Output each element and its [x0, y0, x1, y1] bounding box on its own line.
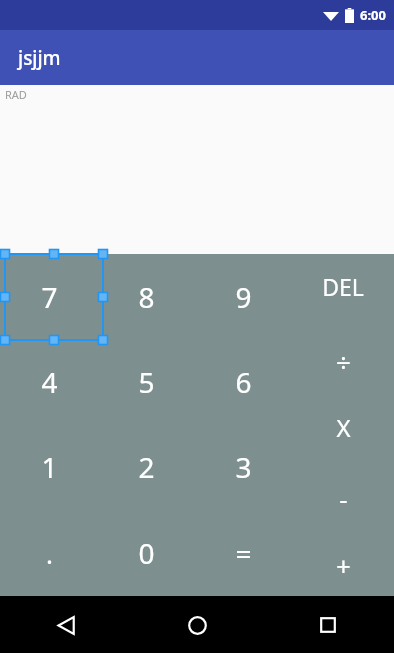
button[interactable]: Back: [42, 601, 90, 649]
staticText: 2: [138, 448, 155, 486]
staticText: 7: [41, 278, 58, 316]
button[interactable]: 3: [195, 424, 292, 510]
button[interactable]: X: [292, 392, 394, 460]
button[interactable]: 9: [195, 254, 292, 339]
staticText: 6:00: [360, 6, 386, 24]
staticText: 1: [41, 448, 58, 486]
button[interactable]: .: [0, 510, 98, 596]
staticText: =: [235, 534, 252, 572]
staticText: 0: [138, 534, 155, 572]
button[interactable]: Home: [173, 601, 221, 649]
staticText: 6: [235, 363, 252, 401]
button[interactable]: 8: [98, 254, 195, 339]
button[interactable]: 6: [195, 339, 292, 424]
button[interactable]: ÷: [292, 323, 394, 392]
button[interactable]: 0: [98, 510, 195, 596]
staticText: +: [336, 548, 351, 583]
button[interactable]: -: [292, 460, 394, 528]
button[interactable]: =: [195, 510, 292, 596]
staticText: DEL: [322, 271, 364, 302]
staticText: jsjjm: [18, 45, 61, 71]
staticText: 4: [41, 363, 58, 401]
button[interactable]: +: [292, 528, 394, 596]
staticText: ÷: [336, 344, 351, 379]
staticText: 3: [235, 448, 252, 486]
staticText: 5: [138, 363, 155, 401]
button[interactable]: Recent apps: [304, 601, 352, 649]
button[interactable]: 5: [98, 339, 195, 424]
staticText: X: [336, 411, 351, 444]
button[interactable]: DEL: [292, 254, 394, 323]
button[interactable]: 7: [0, 254, 98, 339]
staticText: 9: [235, 278, 252, 316]
button[interactable]: 4: [0, 339, 98, 424]
button[interactable]: 2: [98, 424, 195, 510]
staticText: 8: [138, 278, 155, 316]
button[interactable]: 1: [0, 424, 98, 510]
staticText: RAD: [5, 87, 27, 102]
staticText: -: [339, 481, 348, 516]
staticText: .: [46, 536, 53, 571]
